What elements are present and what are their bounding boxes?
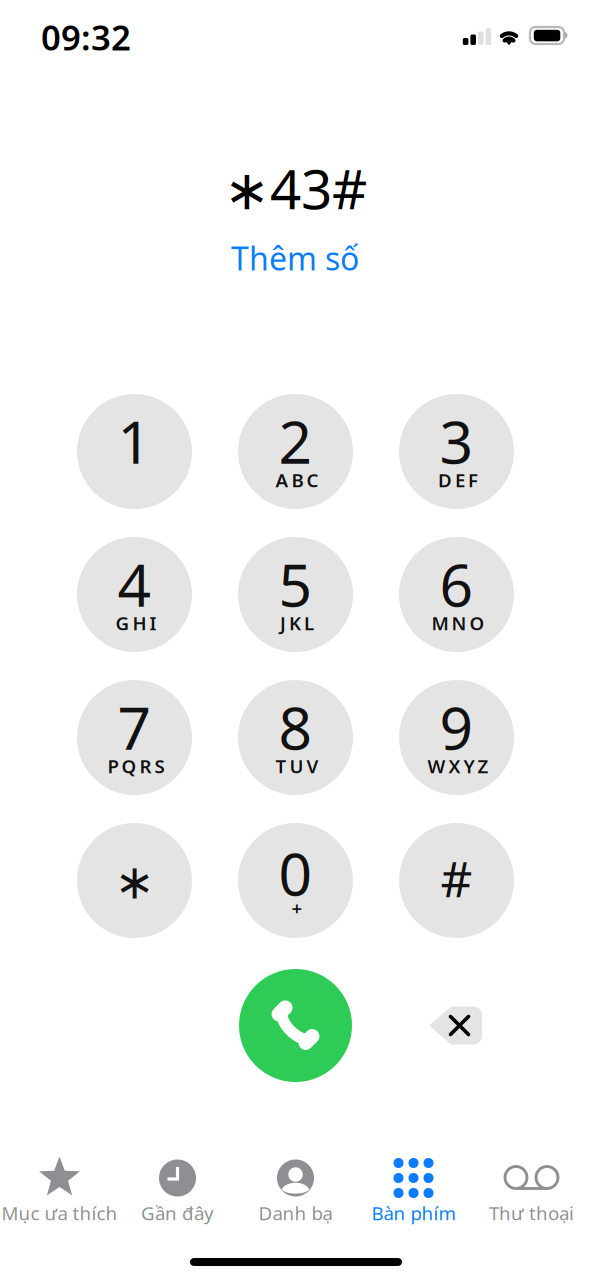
staticText: TUV: [275, 754, 318, 778]
staticText: 5: [278, 545, 312, 623]
staticText: PQRS: [107, 754, 164, 778]
staticText: Danh bạ: [258, 1201, 332, 1225]
staticText: 09:32: [41, 14, 131, 60]
button[interactable]: Thư thoại: [472, 1150, 590, 1228]
button[interactable]: Call: [239, 969, 352, 1082]
staticText: 3: [439, 402, 473, 480]
staticText: 4: [117, 545, 151, 623]
staticText: 8: [278, 688, 312, 766]
staticText: WXYZ: [427, 754, 488, 778]
staticText: 1: [117, 402, 151, 480]
button[interactable]: 1: [77, 394, 192, 509]
staticText: 2: [278, 402, 312, 480]
staticText: ∗43#: [224, 152, 367, 224]
button[interactable]: 2: [238, 394, 353, 509]
button[interactable]: 5: [238, 537, 353, 652]
staticText: 6: [439, 545, 473, 623]
button[interactable]: 8: [238, 680, 353, 795]
staticText: Thêm số: [231, 237, 359, 279]
button[interactable]: 3: [399, 394, 514, 509]
staticText: Bàn phím: [371, 1201, 455, 1225]
button[interactable]: 4: [77, 537, 192, 652]
staticText: 0: [278, 834, 312, 912]
staticText: 7: [117, 688, 151, 766]
staticText: Thư thoại: [489, 1201, 574, 1225]
staticText: Gần đây: [141, 1201, 214, 1225]
button[interactable]: Mục ưa thích: [0, 1150, 118, 1228]
staticText: DEF: [438, 468, 478, 492]
staticText: MNO: [431, 611, 484, 635]
button[interactable]: ∗: [77, 823, 192, 938]
button[interactable]: Delete: [398, 969, 513, 1082]
button[interactable]: Thêm số: [185, 238, 405, 278]
button[interactable]: #: [399, 823, 514, 938]
staticText: ABC: [275, 468, 318, 492]
staticText: GHI: [115, 611, 156, 635]
button[interactable]: Bàn phím: [354, 1150, 472, 1228]
button[interactable]: 0: [238, 823, 353, 938]
staticText: 9: [439, 688, 473, 766]
button[interactable]: 6: [399, 537, 514, 652]
button[interactable]: Danh bạ: [236, 1150, 354, 1228]
button[interactable]: 9: [399, 680, 514, 795]
staticText: +: [291, 896, 302, 920]
staticText: JKL: [280, 611, 314, 635]
button[interactable]: Gần đây: [118, 1150, 236, 1228]
staticText: ∗: [114, 855, 154, 909]
staticText: #: [440, 845, 472, 911]
button[interactable]: 7: [77, 680, 192, 795]
staticText: Mục ưa thích: [1, 1201, 117, 1225]
